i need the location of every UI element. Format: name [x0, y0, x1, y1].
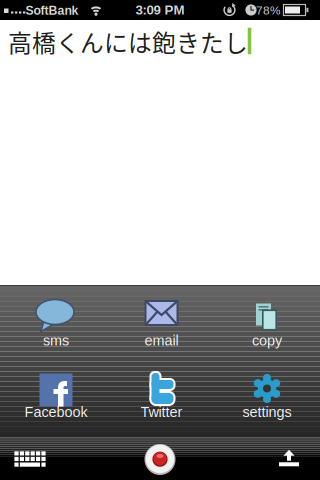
button[interactable]: settings — [214, 361, 320, 437]
staticText: settings — [242, 404, 291, 420]
button[interactable]: Twitter — [108, 361, 214, 437]
staticText: Facebook — [24, 404, 87, 420]
staticText: sms — [43, 332, 69, 349]
button[interactable]: Keyboard — [0, 437, 60, 480]
button[interactable]: Eject — [264, 436, 314, 479]
button[interactable]: Facebook — [3, 361, 109, 437]
staticText: 高橋くんには飽きたし — [8, 24, 248, 59]
staticText: 78% — [256, 4, 280, 17]
staticText: copy — [252, 332, 282, 349]
button[interactable]: sms — [3, 285, 109, 361]
staticText: Twitter — [140, 404, 182, 420]
staticText: 3:09 PM — [135, 3, 184, 17]
button[interactable]: email — [108, 285, 214, 361]
staticText: email — [144, 332, 178, 349]
button[interactable]: Record — [138, 438, 182, 480]
staticText: SoftBank — [25, 4, 78, 17]
button[interactable]: copy — [214, 285, 320, 361]
